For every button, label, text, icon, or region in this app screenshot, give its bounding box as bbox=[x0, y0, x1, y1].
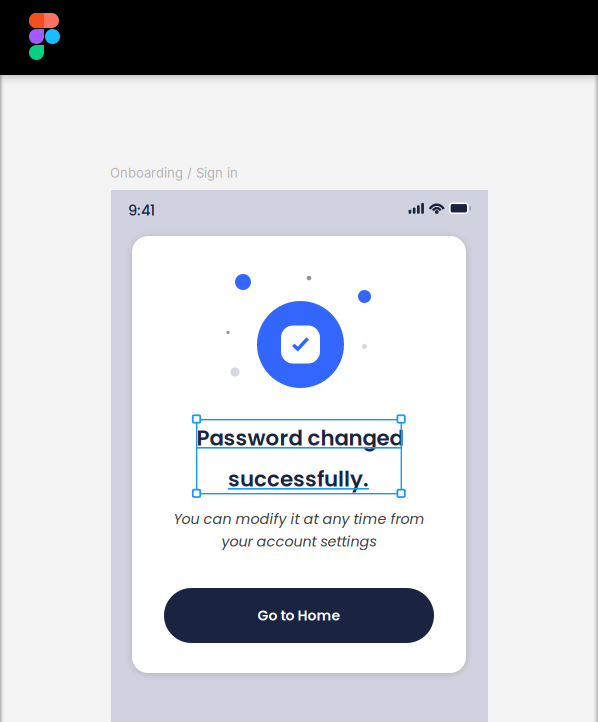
staticText: successfully. bbox=[228, 464, 369, 494]
staticText: Onboarding / Sign in bbox=[110, 165, 238, 181]
staticText: your account settings bbox=[221, 531, 376, 551]
staticText: Password changed bbox=[196, 423, 403, 453]
button[interactable]: Go to Home bbox=[164, 588, 434, 643]
staticText: Go to Home bbox=[257, 606, 340, 625]
staticText: You can modify it at any time from bbox=[173, 509, 424, 529]
staticText: 9:41 bbox=[128, 200, 155, 220]
